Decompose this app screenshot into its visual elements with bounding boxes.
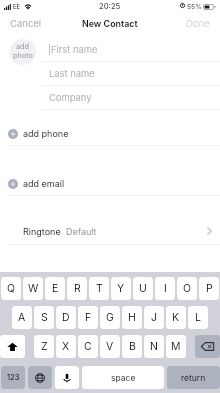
button[interactable]: Dictate <box>55 366 79 389</box>
button[interactable]: F <box>78 306 98 329</box>
staticText: First name <box>51 44 98 55</box>
staticText: Cancel <box>10 18 42 29</box>
staticText: photo <box>13 51 33 60</box>
staticText: EE <box>13 3 21 10</box>
staticText: X <box>62 340 70 353</box>
staticText: Default <box>66 226 97 237</box>
button[interactable]: K <box>166 306 186 329</box>
staticText: Z <box>41 340 48 353</box>
button[interactable]: Y <box>111 277 131 300</box>
staticText: C <box>84 340 92 353</box>
staticText: G <box>106 311 114 324</box>
button[interactable]: 123 <box>1 366 25 389</box>
staticText: space <box>111 373 136 383</box>
button[interactable]: Cancel <box>0 14 52 33</box>
staticText: Y <box>117 282 125 295</box>
button[interactable]: V <box>100 335 120 358</box>
staticText: 55% <box>187 3 202 11</box>
button[interactable]: Q <box>1 277 21 300</box>
button[interactable]: E <box>45 277 65 300</box>
staticText: add phone <box>23 128 69 139</box>
button[interactable]: G <box>100 306 120 329</box>
staticText: B <box>129 340 136 353</box>
staticText: S <box>41 311 48 324</box>
button[interactable]: Company <box>0 85 220 109</box>
staticText: Ringtone <box>23 226 61 237</box>
button[interactable]: space <box>82 366 164 389</box>
button[interactable]: add photo <box>10 39 36 65</box>
button[interactable]: I <box>155 277 175 300</box>
staticText: L <box>195 311 201 324</box>
staticText: 123 <box>7 373 20 382</box>
button[interactable]: N <box>144 335 164 358</box>
staticText: Company <box>49 92 92 103</box>
staticText: N <box>150 340 158 353</box>
button[interactable]: Z <box>34 335 54 358</box>
button[interactable]: L <box>188 306 208 329</box>
button[interactable]: J <box>144 306 164 329</box>
button[interactable]: T <box>89 277 109 300</box>
button[interactable]: X <box>56 335 76 358</box>
staticText: A <box>18 311 26 324</box>
button[interactable]: H <box>122 306 142 329</box>
button[interactable]: Shift <box>0 335 25 358</box>
staticText: U <box>139 282 147 295</box>
staticText: O <box>183 282 192 295</box>
button[interactable]: First name <box>0 37 220 61</box>
staticText: M <box>171 340 181 353</box>
button[interactable]: A <box>12 306 32 329</box>
button[interactable]: S <box>34 306 54 329</box>
staticText: New Contact <box>82 18 138 29</box>
staticText: R <box>74 282 81 295</box>
button[interactable]: Switch keyboard <box>28 366 52 389</box>
staticText: add email <box>23 178 65 189</box>
button[interactable]: W <box>23 277 43 300</box>
button[interactable]: B <box>122 335 142 358</box>
staticText: Done <box>186 18 210 29</box>
button[interactable]: O <box>177 277 197 300</box>
button[interactable]: return <box>167 366 220 389</box>
staticText: add <box>16 42 30 51</box>
button[interactable]: M <box>166 335 186 358</box>
button[interactable]: Last name <box>0 61 220 85</box>
button[interactable]: C <box>78 335 98 358</box>
staticText: Q <box>7 282 16 295</box>
button[interactable]: Backspace <box>195 335 220 358</box>
staticText: J <box>151 311 157 324</box>
staticText: K <box>172 311 180 324</box>
button[interactable]: U <box>133 277 153 300</box>
staticText: V <box>106 340 114 353</box>
staticText: H <box>128 311 136 324</box>
staticText: P <box>206 282 213 295</box>
staticText: 20:25 <box>99 2 121 11</box>
staticText: I <box>164 282 167 295</box>
staticText: W <box>28 282 39 295</box>
staticText: E <box>52 282 59 295</box>
button[interactable]: P <box>199 277 219 300</box>
button[interactable]: Done <box>176 14 220 33</box>
staticText: T <box>96 282 103 295</box>
button[interactable]: add phone <box>0 121 220 145</box>
button[interactable]: D <box>56 306 76 329</box>
button[interactable]: R <box>67 277 87 300</box>
staticText: F <box>85 311 92 324</box>
button[interactable]: Ringtone <box>0 219 220 243</box>
staticText: return <box>181 373 206 383</box>
button[interactable]: add email <box>0 171 220 195</box>
staticText: D <box>62 311 70 324</box>
staticText: Last name <box>49 68 95 79</box>
